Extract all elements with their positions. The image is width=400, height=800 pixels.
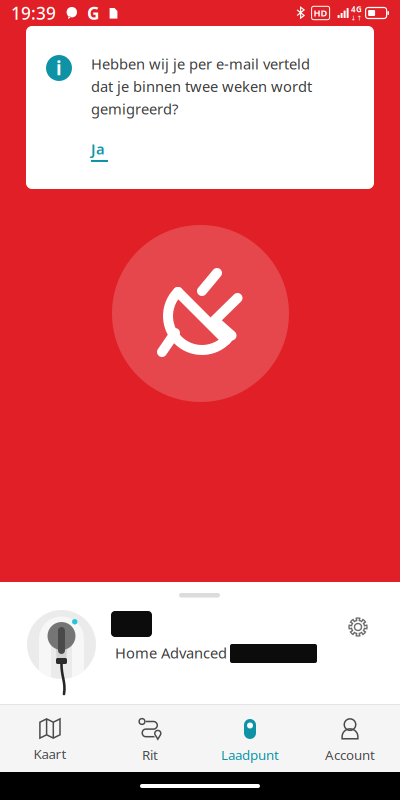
button[interactable]: Kaart xyxy=(0,705,100,772)
button[interactable]: Account xyxy=(300,705,400,772)
staticText: ↓↑ xyxy=(351,14,363,22)
staticText: Account xyxy=(325,746,375,764)
button[interactable]: Rit xyxy=(100,705,200,772)
staticText: Home Advanced xyxy=(115,643,227,662)
staticText: Rit xyxy=(142,746,158,764)
staticText: G xyxy=(87,1,100,24)
staticText: Hebben wij je per e-mail verteld xyxy=(91,54,310,73)
staticText: i xyxy=(56,56,62,80)
button[interactable]: Ja xyxy=(26,26,108,162)
staticText: HD xyxy=(314,7,328,19)
button[interactable]: Settings xyxy=(336,605,380,649)
staticText: dat je binnen twee weken wordt xyxy=(91,76,312,96)
staticText: gemigreerd? xyxy=(91,99,178,118)
staticText: 19:39 xyxy=(11,1,56,24)
button[interactable]: Laadpunt xyxy=(200,705,300,772)
staticText: Ja xyxy=(91,139,105,158)
staticText: Kaart xyxy=(33,745,66,763)
staticText: 4G xyxy=(351,4,362,14)
staticText: Laadpunt xyxy=(221,746,279,764)
